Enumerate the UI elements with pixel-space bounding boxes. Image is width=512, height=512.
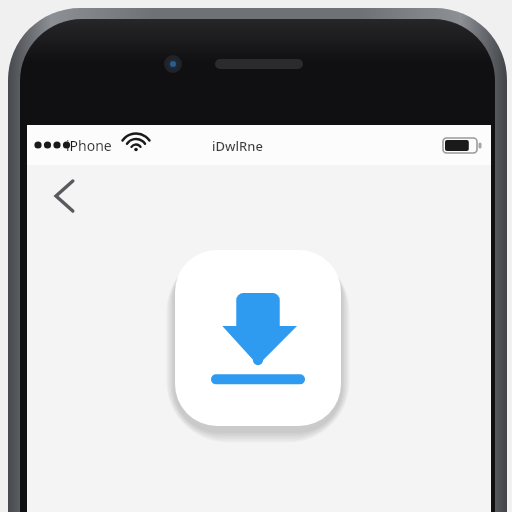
staticText: iDwlRne bbox=[212, 137, 263, 155]
button[interactable]: Download bbox=[175, 250, 341, 426]
staticText: iPhone bbox=[66, 136, 112, 155]
button[interactable]: Back bbox=[36, 168, 92, 224]
